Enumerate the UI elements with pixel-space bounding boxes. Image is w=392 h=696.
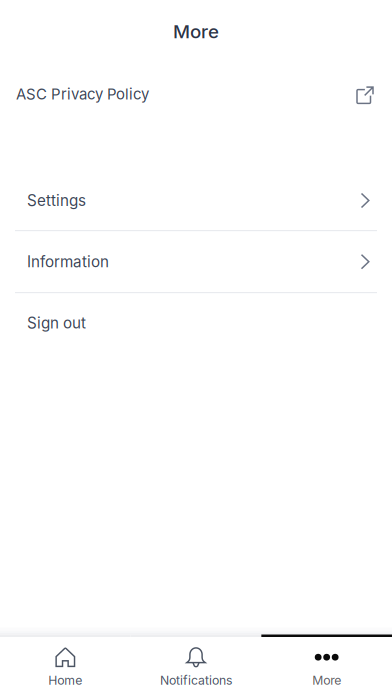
- button[interactable]: Sign out: [0, 293, 392, 355]
- staticText: Notifications: [160, 673, 232, 688]
- staticText: More: [173, 20, 219, 43]
- staticText: Sign out: [27, 314, 86, 332]
- staticText: Home: [48, 673, 82, 688]
- staticText: Settings: [27, 191, 86, 210]
- button[interactable]: Home: [0, 637, 131, 696]
- staticText: More: [312, 673, 341, 688]
- button[interactable]: Notifications: [131, 637, 261, 696]
- staticText: Information: [27, 252, 109, 271]
- button[interactable]: Information: [0, 231, 392, 292]
- button[interactable]: Settings: [0, 168, 392, 230]
- staticText: ASC Privacy Policy: [16, 85, 149, 103]
- button[interactable]: ASC Privacy Policy: [0, 76, 392, 114]
- button[interactable]: More: [261, 637, 392, 696]
